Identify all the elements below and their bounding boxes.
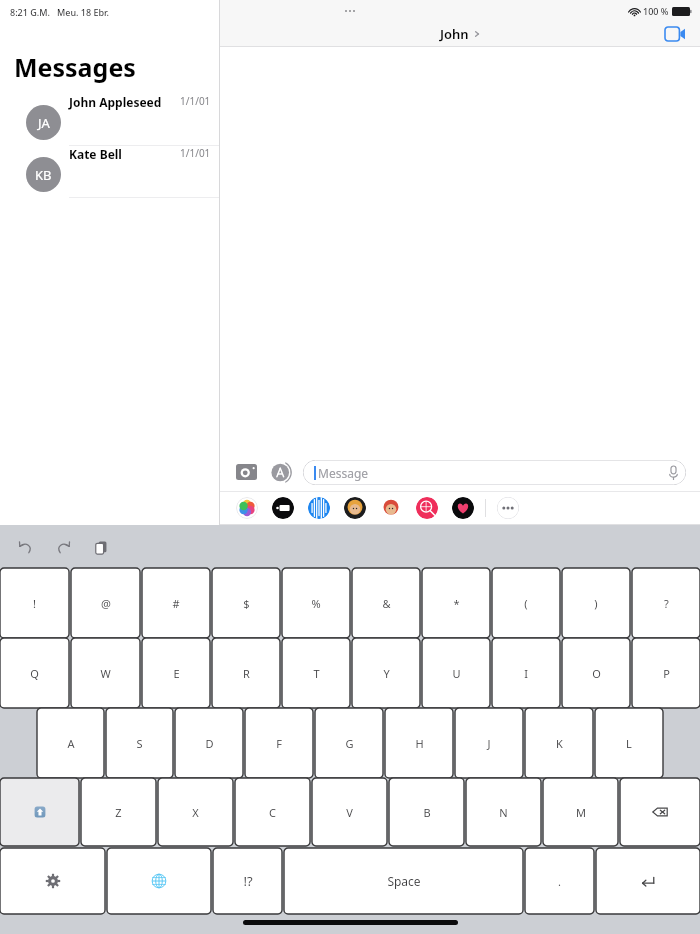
button[interactable]: # — [142, 568, 210, 638]
staticText: $ — [243, 596, 250, 611]
button[interactable]: Q — [0, 638, 69, 708]
staticText: 1/1/01 — [180, 94, 211, 108]
button[interactable]: W — [71, 638, 140, 708]
staticText: 100 % — [643, 5, 669, 17]
button[interactable]: KB — [0, 146, 219, 198]
button[interactable]: J — [455, 708, 523, 778]
button[interactable]: Start FaceTime video call — [662, 22, 688, 46]
staticText: P — [663, 666, 670, 681]
staticText: H — [415, 736, 424, 751]
staticText: U — [452, 666, 461, 681]
button[interactable]: Apple Cash — [272, 497, 294, 519]
button[interactable]: G — [315, 708, 383, 778]
staticText: Q — [30, 666, 39, 681]
button[interactable]: I — [492, 638, 560, 708]
button[interactable]: Photos — [236, 497, 258, 519]
button[interactable]: T — [282, 638, 350, 708]
button[interactable]: A — [37, 708, 104, 778]
button[interactable]: Memoji — [344, 497, 366, 519]
staticText: ( — [524, 596, 528, 611]
button[interactable]: $ — [212, 568, 280, 638]
button[interactable]: % — [282, 568, 350, 638]
button[interactable]: John — [440, 25, 481, 43]
staticText: ? — [664, 596, 669, 611]
button[interactable]: S — [106, 708, 173, 778]
button[interactable]: ( — [492, 568, 560, 638]
button[interactable]: Shift — [0, 778, 79, 846]
button[interactable]: E — [142, 638, 210, 708]
button[interactable]: Y — [352, 638, 420, 708]
button[interactable]: Message — [303, 460, 686, 485]
button[interactable]: P — [632, 638, 700, 708]
staticText: * — [453, 596, 460, 611]
button[interactable]: X — [158, 778, 233, 846]
staticText: JA — [38, 114, 50, 132]
button[interactable]: Audio message — [308, 497, 330, 519]
staticText: J — [487, 736, 491, 751]
button[interactable]: H — [385, 708, 453, 778]
button[interactable]: Stickers — [380, 497, 402, 519]
staticText: D — [205, 736, 214, 751]
button[interactable]: C — [235, 778, 310, 846]
staticText: 8:21 G.M. Meu. 18 Ebr. — [10, 6, 109, 18]
button[interactable]: ? — [632, 568, 700, 638]
button[interactable]: Redo — [52, 536, 74, 558]
button[interactable]: JA — [0, 94, 219, 146]
button[interactable]: App Store — [270, 461, 293, 484]
button[interactable]: Images search — [416, 497, 438, 519]
staticText: E — [173, 666, 180, 681]
staticText: R — [243, 666, 250, 681]
staticText: @ — [101, 596, 111, 611]
button[interactable]: ! — [0, 568, 69, 638]
staticText: V — [346, 805, 353, 820]
button[interactable]: M — [543, 778, 618, 846]
staticText: 1/1/01 — [180, 146, 211, 160]
button[interactable]: R — [212, 638, 280, 708]
staticText: B — [423, 805, 431, 820]
button[interactable]: Backspace — [620, 778, 700, 846]
staticText: # — [172, 596, 180, 611]
button[interactable]: U — [422, 638, 490, 708]
staticText: KB — [35, 166, 52, 184]
staticText: & — [382, 596, 391, 611]
button[interactable]: * — [422, 568, 490, 638]
button[interactable]: F — [245, 708, 313, 778]
button[interactable]: ) — [562, 568, 630, 638]
button[interactable]: N — [466, 778, 541, 846]
staticText: G — [345, 736, 354, 751]
button[interactable]: Camera — [234, 460, 258, 484]
button[interactable]: @ — [71, 568, 140, 638]
staticText: John — [440, 25, 469, 43]
button[interactable]: . — [525, 848, 594, 914]
staticText: M — [576, 805, 586, 820]
button[interactable]: Return — [596, 848, 700, 914]
button[interactable]: Undo — [14, 536, 36, 558]
staticText: S — [136, 736, 143, 751]
button[interactable]: !? — [213, 848, 282, 914]
button[interactable]: K — [525, 708, 593, 778]
button[interactable]: Digital Touch — [452, 497, 474, 519]
button[interactable]: Z — [81, 778, 156, 846]
staticText: L — [626, 736, 632, 751]
button[interactable]: Change language — [107, 848, 211, 914]
staticText: N — [499, 805, 508, 820]
staticText: Z — [115, 805, 122, 820]
staticText: F — [276, 736, 282, 751]
button[interactable]: D — [175, 708, 243, 778]
button[interactable]: O — [562, 638, 630, 708]
button[interactable]: Space — [284, 848, 523, 914]
staticText: John Appleseed — [69, 94, 162, 110]
staticText: X — [192, 805, 199, 820]
staticText: A — [67, 736, 75, 751]
staticText: W — [100, 666, 111, 681]
button[interactable]: L — [595, 708, 663, 778]
staticText: O — [592, 666, 601, 681]
staticText: Space — [387, 873, 421, 889]
button[interactable]: & — [352, 568, 420, 638]
button[interactable]: Settings — [0, 848, 105, 914]
staticText: % — [311, 596, 321, 611]
button[interactable]: More apps — [497, 497, 519, 519]
button[interactable]: V — [312, 778, 387, 846]
button[interactable]: Paste — [90, 536, 112, 558]
button[interactable]: B — [389, 778, 464, 846]
